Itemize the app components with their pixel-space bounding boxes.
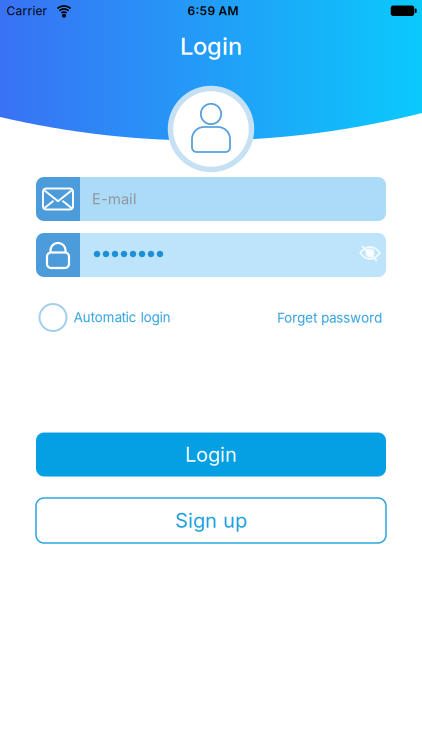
staticText: Forget password xyxy=(277,310,382,326)
button[interactable]: Sign up xyxy=(36,498,386,543)
staticText: Login xyxy=(180,32,242,60)
staticText: Login xyxy=(185,443,237,466)
staticText: E-mail xyxy=(92,190,137,208)
staticText: 6:59 AM xyxy=(187,4,238,18)
button[interactable]: Forget password xyxy=(182,310,382,326)
staticText: Automatic login xyxy=(73,310,170,325)
button[interactable]: Show password xyxy=(356,240,384,268)
staticText: Carrier xyxy=(6,4,47,18)
button[interactable]: E-mail xyxy=(36,177,386,221)
button[interactable]: Automatic login xyxy=(39,304,319,331)
button[interactable] xyxy=(36,233,386,277)
button[interactable]: Login xyxy=(36,432,386,476)
staticText: Sign up xyxy=(175,509,247,532)
